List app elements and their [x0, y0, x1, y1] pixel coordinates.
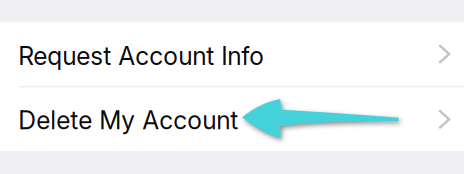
button[interactable]: Request Account Info: [0, 22, 464, 86]
button[interactable]: Delete My Account: [0, 88, 464, 151]
staticText: Delete My Account: [18, 105, 238, 135]
staticText: Request Account Info: [18, 41, 264, 71]
